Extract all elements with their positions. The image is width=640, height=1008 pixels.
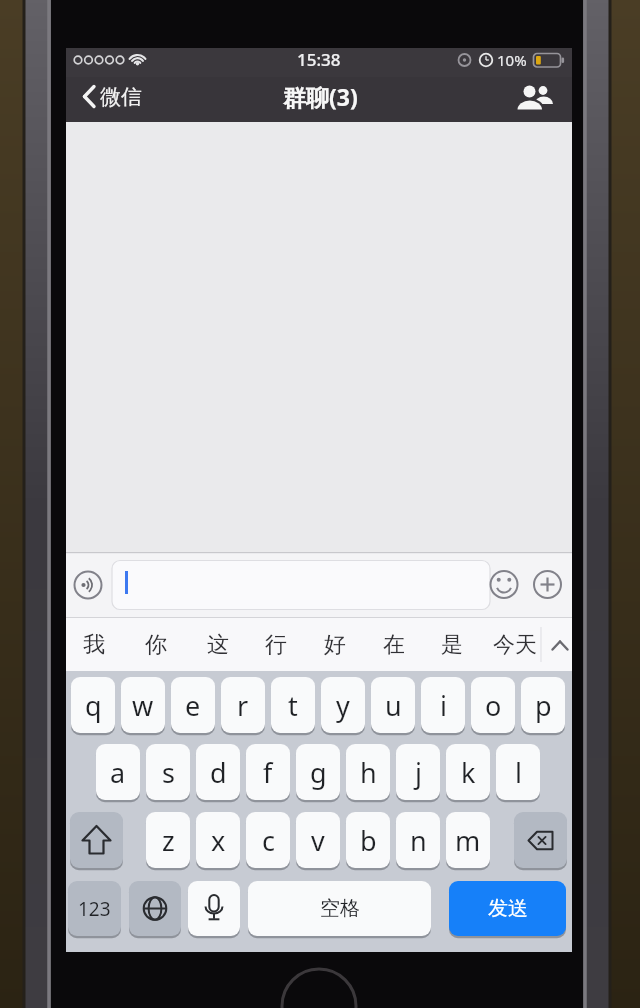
button[interactable] [508, 79, 564, 119]
button[interactable]: b [346, 812, 390, 868]
button[interactable]: 发送 [449, 881, 566, 936]
staticText: g [310, 754, 327, 791]
staticText: r [237, 687, 249, 724]
staticText: s [162, 754, 175, 791]
button[interactable]: t [271, 677, 315, 733]
staticText: 我 [83, 631, 105, 659]
button[interactable]: o [471, 677, 515, 733]
button[interactable] [546, 626, 572, 664]
staticText: 这 [207, 631, 229, 659]
staticText: d [210, 754, 227, 791]
button[interactable]: k [446, 744, 490, 800]
staticText: h [360, 754, 377, 791]
button[interactable]: v [296, 812, 340, 868]
staticText: 15:38 [297, 48, 341, 71]
staticText: 10% [497, 50, 527, 70]
staticText: a [110, 754, 126, 791]
button[interactable] [129, 881, 181, 936]
staticText: f [263, 754, 273, 791]
staticText: b [360, 822, 377, 859]
button[interactable]: j [396, 744, 440, 800]
staticText: y [336, 687, 350, 724]
button[interactable] [514, 812, 567, 868]
staticText: i [440, 687, 447, 724]
staticText: x [211, 822, 226, 859]
button[interactable]: c [246, 812, 290, 868]
button[interactable] [488, 568, 521, 602]
button[interactable]: 是 [430, 623, 474, 666]
button[interactable] [531, 568, 564, 602]
button[interactable]: s [146, 744, 190, 800]
staticText: l [515, 754, 522, 791]
button[interactable] [188, 881, 240, 936]
button[interactable]: h [346, 744, 390, 800]
button[interactable]: y [321, 677, 365, 733]
staticText: k [461, 754, 476, 791]
staticText: w [132, 687, 154, 724]
staticText: c [262, 822, 275, 859]
button[interactable]: 今天 [483, 623, 547, 666]
button[interactable]: i [421, 677, 465, 733]
button[interactable]: d [196, 744, 240, 800]
button[interactable]: 在 [372, 623, 416, 666]
staticText: e [185, 687, 201, 724]
button[interactable]: 这 [196, 623, 240, 666]
button[interactable]: 好 [313, 623, 357, 666]
button[interactable] [72, 568, 105, 602]
button[interactable] [74, 79, 150, 119]
button[interactable]: 123 [68, 881, 121, 936]
button[interactable]: l [496, 744, 540, 800]
staticText: 行 [265, 631, 287, 659]
button[interactable]: u [371, 677, 415, 733]
button[interactable]: 空格 [248, 881, 431, 936]
button[interactable]: x [196, 812, 240, 868]
staticText: v [311, 822, 325, 859]
staticText: 好 [324, 631, 346, 659]
button[interactable]: g [296, 744, 340, 800]
button[interactable]: 你 [134, 623, 178, 666]
staticText: 今天 [493, 631, 537, 659]
button[interactable]: m [446, 812, 490, 868]
button[interactable]: 行 [254, 623, 298, 666]
button[interactable]: n [396, 812, 440, 868]
staticText: q [85, 687, 102, 724]
staticText: n [410, 822, 427, 859]
button[interactable]: e [171, 677, 215, 733]
staticText: o [485, 687, 502, 724]
staticText: 在 [383, 631, 405, 659]
button[interactable]: q [71, 677, 115, 733]
staticText: t [288, 687, 298, 724]
button[interactable]: a [96, 744, 140, 800]
button[interactable]: 我 [72, 623, 116, 666]
staticText: 发送 [488, 896, 528, 921]
staticText: 空格 [320, 896, 360, 921]
button[interactable] [70, 812, 123, 868]
staticText: 微信 [100, 84, 142, 110]
staticText: p [535, 687, 552, 724]
staticText: 群聊(3) [283, 81, 358, 112]
staticText: 是 [441, 631, 463, 659]
button[interactable]: p [521, 677, 565, 733]
staticText: z [162, 822, 175, 859]
button[interactable]: r [221, 677, 265, 733]
staticText: u [385, 687, 402, 724]
button[interactable]: f [246, 744, 290, 800]
staticText: j [415, 754, 422, 791]
button[interactable] [112, 560, 490, 610]
button[interactable]: w [121, 677, 165, 733]
button[interactable]: z [146, 812, 190, 868]
staticText: 你 [145, 631, 167, 659]
staticText: 123 [78, 896, 111, 922]
staticText: m [455, 822, 481, 859]
